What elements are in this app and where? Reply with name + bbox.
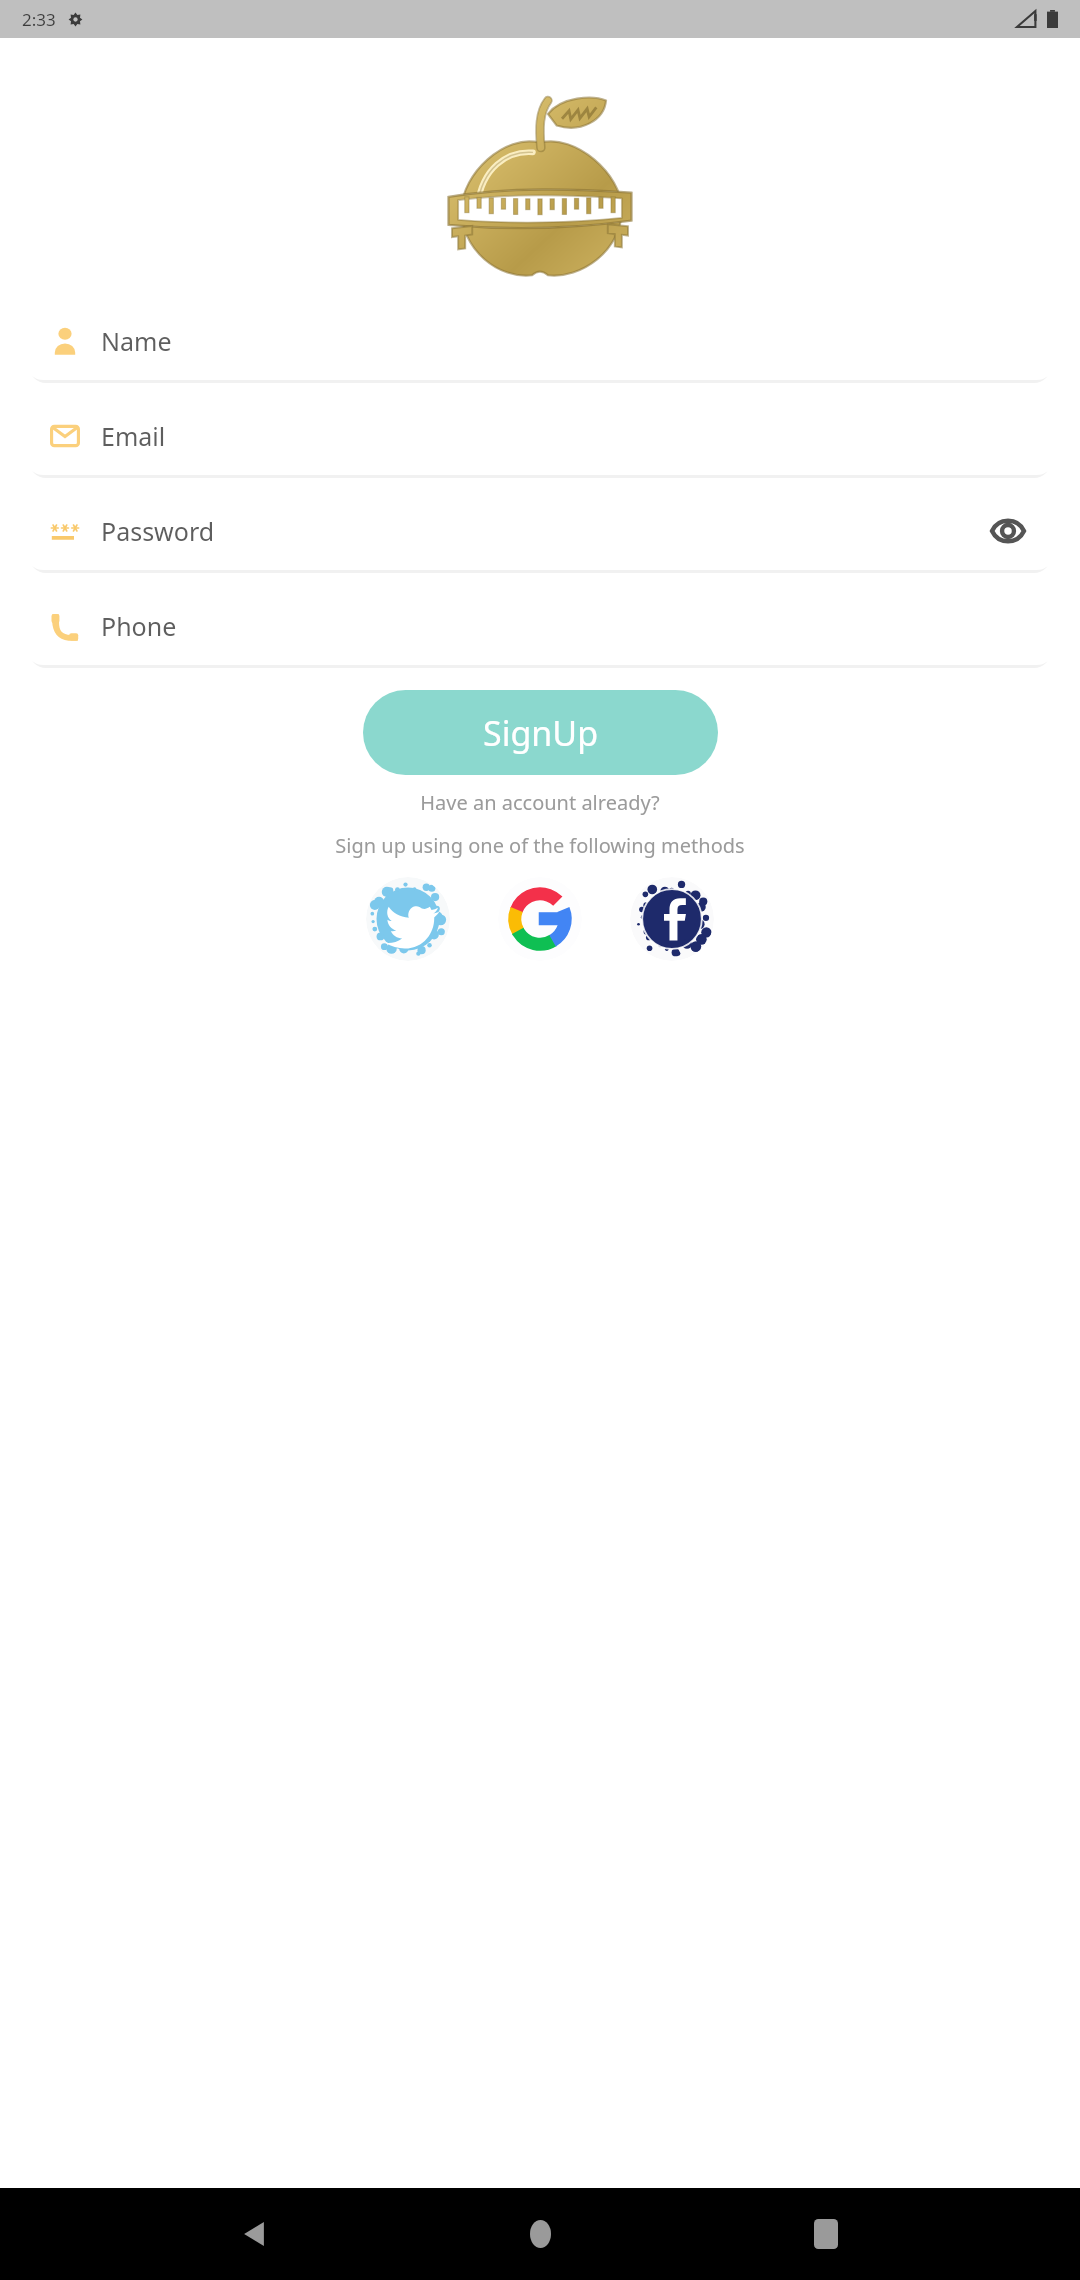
button[interactable]: Home [508, 2202, 572, 2266]
button[interactable]: Back [222, 2202, 286, 2266]
button[interactable]: Sign up with Facebook [630, 877, 714, 961]
button[interactable]: Name [26, 301, 1054, 380]
staticText: 2:33 [22, 8, 56, 31]
staticText: Phone [101, 609, 177, 643]
button[interactable]: Phone [26, 586, 1054, 665]
button[interactable]: Email [26, 396, 1054, 475]
button[interactable]: Sign up with Google [498, 877, 582, 961]
button[interactable]: SignUp [363, 690, 718, 775]
staticText: SignUp [483, 710, 599, 756]
button[interactable]: Have an account already? [408, 785, 672, 820]
button[interactable]: Password [26, 491, 1054, 570]
button[interactable]: Sign up with Twitter [366, 877, 450, 961]
button[interactable]: Show password [986, 509, 1030, 553]
staticText: Sign up using one of the following metho… [335, 832, 745, 859]
staticText: Email [101, 419, 166, 453]
button[interactable]: Recent apps [794, 2202, 858, 2266]
staticText: Password [101, 514, 215, 548]
staticText: Name [101, 324, 172, 358]
